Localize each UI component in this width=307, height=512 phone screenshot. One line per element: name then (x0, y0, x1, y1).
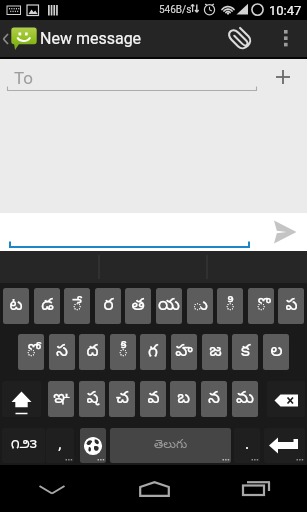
staticText: ఞ (53, 388, 70, 411)
button[interactable]: More options (267, 20, 305, 57)
staticText: , (58, 436, 63, 456)
button[interactable]: గ (140, 334, 166, 370)
button[interactable]: త (125, 288, 151, 324)
staticText: ర (103, 295, 114, 318)
staticText: స (56, 341, 68, 364)
button[interactable]: ◌ే (64, 288, 90, 324)
button[interactable]: ప (278, 288, 304, 324)
staticText: బ (177, 388, 190, 411)
staticText: ◌ీ (118, 341, 128, 364)
staticText: ◌ు (192, 295, 208, 318)
staticText: క (241, 341, 250, 364)
staticText: 546B/s (159, 4, 192, 16)
staticText: వ (147, 388, 160, 411)
button[interactable]: ద (79, 334, 105, 370)
staticText: ౧౨౩ (11, 437, 37, 455)
staticText: ప (285, 295, 298, 318)
staticText: 10:47 (269, 3, 302, 18)
button[interactable]: Recent apps (205, 465, 307, 512)
staticText: ద (86, 341, 99, 364)
button[interactable]: హ (171, 334, 197, 370)
button[interactable]: Home (103, 465, 205, 512)
button[interactable]: Navigate up (0, 20, 142, 57)
button[interactable]: తెలుగు (110, 428, 231, 463)
button[interactable]: ట (3, 288, 29, 324)
button[interactable]: వ (140, 381, 166, 417)
button[interactable]: ◌ీ (110, 334, 136, 370)
button[interactable]: . (234, 428, 260, 463)
button[interactable]: డ (34, 288, 60, 324)
button[interactable]: , (46, 428, 74, 463)
staticText: య (158, 295, 180, 318)
button[interactable]: Hide keyboard (0, 465, 103, 512)
button[interactable]: Backspace (267, 381, 305, 417)
button[interactable]: స (49, 334, 75, 370)
staticText: ష (86, 388, 99, 411)
button[interactable]: Attach (223, 20, 259, 57)
staticText: తెలుగు (154, 438, 188, 454)
staticText: ◌ే (72, 295, 82, 318)
button[interactable]: ష (79, 381, 105, 417)
button[interactable]: ఞ (48, 381, 74, 417)
button[interactable]: ర (95, 288, 121, 324)
staticText: మ (236, 388, 254, 411)
button[interactable]: ◌ొ (248, 288, 274, 324)
other: Navigate up (0, 28, 11, 50)
button[interactable]: చ (109, 381, 135, 417)
button[interactable]: Add recipient (269, 63, 297, 91)
button[interactable]: బ (170, 381, 196, 417)
staticText: త (131, 295, 145, 318)
staticText: . (245, 436, 250, 456)
staticText: ◌ో (26, 341, 36, 364)
button[interactable]: Change keyboard (80, 428, 106, 463)
button[interactable]: జ (202, 334, 228, 370)
staticText: ◌ి (225, 295, 235, 318)
button[interactable]: ల (263, 334, 289, 370)
button[interactable]: ౧౨౩ (2, 428, 45, 463)
button[interactable]: న (201, 381, 227, 417)
staticText: ల (270, 341, 283, 364)
button[interactable]: మ (232, 381, 258, 417)
staticText: న (208, 388, 220, 411)
button[interactable]: Enter (264, 428, 305, 463)
button[interactable]: Send (270, 217, 300, 247)
button[interactable]: ◌ు (187, 288, 213, 324)
staticText: చ (116, 388, 129, 411)
staticText: New message (40, 29, 142, 48)
button[interactable]: య (156, 288, 182, 324)
button[interactable]: ◌ో (18, 334, 44, 370)
staticText: ◌ొ (256, 295, 266, 318)
staticText: డ (41, 295, 54, 318)
button[interactable]: క (232, 334, 258, 370)
staticText: జ (209, 341, 222, 364)
button[interactable]: ◌ి (217, 288, 243, 324)
staticText: To (14, 68, 34, 88)
staticText: గ (148, 341, 158, 364)
button[interactable]: Shift (2, 381, 41, 417)
staticText: ట (9, 295, 23, 318)
staticText: హ (175, 341, 193, 364)
